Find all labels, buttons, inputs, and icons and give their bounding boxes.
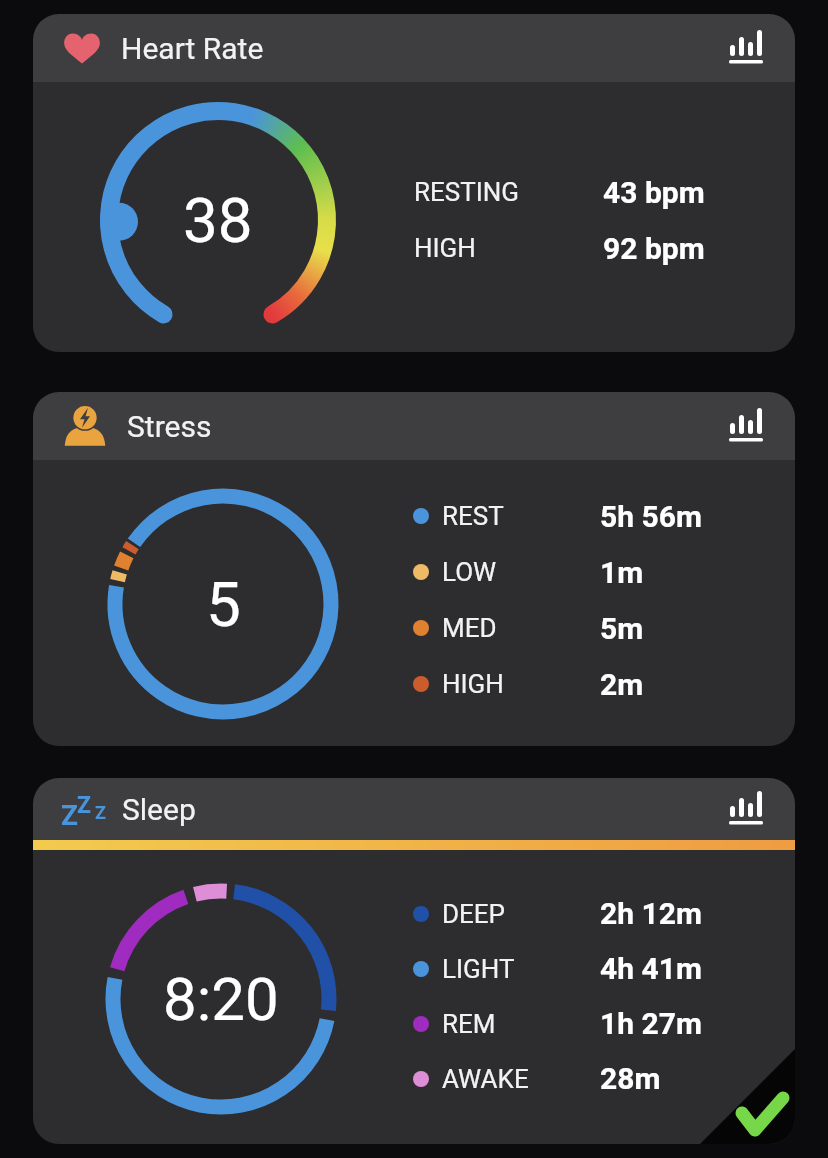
staticText: 1h 27m: [600, 1006, 702, 1041]
staticText: 5m: [600, 611, 644, 646]
staticText: Z: [77, 792, 91, 819]
button[interactable]: Heart Rate: [33, 14, 795, 82]
staticText: 5: [206, 568, 241, 641]
staticText: MED: [442, 613, 497, 643]
button[interactable]: Stress: [33, 392, 795, 460]
staticText: RESTING: [414, 177, 520, 207]
staticText: DEEP: [442, 899, 506, 929]
staticText: 43 bpm: [603, 175, 705, 210]
staticText: 5h 56m: [600, 499, 702, 534]
staticText: 92 bpm: [603, 231, 705, 266]
button[interactable]: 5: [33, 460, 795, 746]
staticText: Z: [61, 799, 78, 832]
staticText: Sleep: [122, 792, 196, 827]
staticText: LOW: [442, 557, 497, 587]
staticText: Heart Rate: [121, 31, 264, 66]
staticText: REM: [442, 1009, 496, 1039]
button[interactable]: Z: [33, 778, 795, 840]
button[interactable]: 38: [33, 82, 795, 352]
staticText: 2m: [600, 667, 644, 702]
staticText: 38: [183, 184, 253, 257]
staticText: REST: [442, 501, 504, 531]
staticText: Stress: [127, 409, 212, 444]
staticText: AWAKE: [442, 1064, 529, 1094]
button[interactable]: 8:20: [33, 850, 795, 1144]
staticText: 4h 41m: [600, 951, 702, 986]
staticText: 28m: [600, 1061, 661, 1096]
staticText: LIGHT: [442, 954, 515, 984]
staticText: 1m: [600, 555, 644, 590]
staticText: 2h 12m: [600, 896, 702, 931]
staticText: HIGH: [442, 669, 504, 699]
staticText: 8:20: [163, 964, 279, 1034]
staticText: Z: [95, 802, 106, 823]
staticText: HIGH: [414, 233, 476, 263]
